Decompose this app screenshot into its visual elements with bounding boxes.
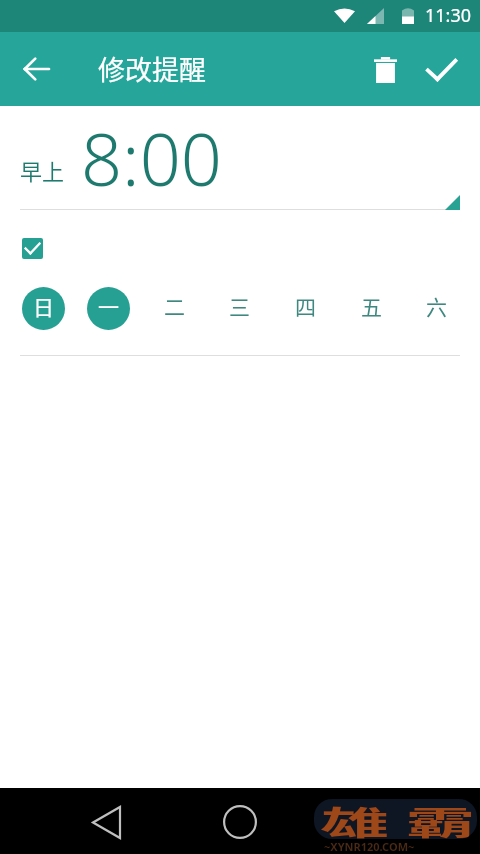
staticText: 二 bbox=[164, 291, 185, 321]
staticText: 五 bbox=[361, 291, 382, 321]
button[interactable]: 五 bbox=[350, 287, 393, 330]
staticText: 早上 bbox=[20, 154, 65, 186]
button[interactable]: 一 bbox=[87, 287, 130, 330]
button[interactable]: Recent apps bbox=[349, 795, 401, 847]
staticText: 修改提醒 bbox=[98, 49, 206, 88]
button[interactable]: Delete bbox=[359, 44, 411, 96]
button[interactable]: Repeat weekly bbox=[22, 238, 43, 259]
staticText: 日 bbox=[33, 291, 54, 321]
staticText: ~XYNR120.COM~ bbox=[324, 839, 415, 854]
staticText: 三 bbox=[229, 291, 250, 321]
staticText: 11:30 bbox=[425, 3, 472, 28]
button[interactable]: 二 bbox=[153, 287, 196, 330]
button[interactable]: Done bbox=[415, 44, 467, 96]
button[interactable]: Home bbox=[214, 796, 266, 848]
button[interactable]: Back bbox=[10, 43, 62, 95]
staticText: 一 bbox=[98, 291, 119, 321]
button[interactable]: Back bbox=[80, 796, 132, 848]
button[interactable]: 三 bbox=[218, 287, 261, 330]
staticText: 雄 霸 bbox=[320, 797, 475, 843]
staticText: 六 bbox=[426, 291, 447, 321]
button[interactable]: 六 bbox=[415, 287, 458, 330]
staticText: 四 bbox=[295, 291, 316, 321]
button[interactable]: 日 bbox=[22, 287, 65, 330]
staticText: 8:00 bbox=[81, 109, 222, 207]
button[interactable]: 四 bbox=[284, 287, 327, 330]
